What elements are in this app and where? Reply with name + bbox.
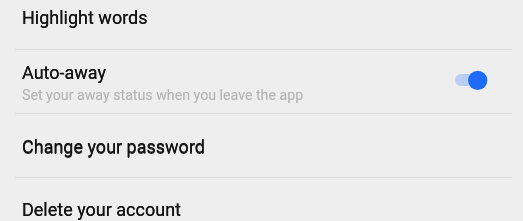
staticText: Delete your account bbox=[22, 199, 181, 220]
button[interactable]: Delete your account bbox=[0, 178, 523, 221]
staticText: Auto-away bbox=[22, 62, 107, 83]
staticText: Change your password bbox=[22, 136, 205, 157]
staticText: Highlight words bbox=[22, 7, 148, 28]
staticText: Change your password bbox=[22, 136, 205, 157]
staticText: Auto-away bbox=[22, 62, 107, 83]
staticText: Highlight words bbox=[22, 7, 148, 28]
staticText: Auto-away bbox=[22, 62, 107, 83]
button[interactable]: Highlight words bbox=[0, 0, 523, 50]
button[interactable]: Auto-away bbox=[0, 50, 523, 114]
staticText: Highlight words bbox=[22, 7, 148, 28]
staticText: Change your password bbox=[22, 137, 205, 158]
button[interactable]: Change your password bbox=[0, 114, 523, 178]
staticText: Delete your account bbox=[22, 199, 181, 220]
staticText: Set your away status when you leave the … bbox=[22, 87, 304, 104]
staticText: Delete your account bbox=[22, 199, 181, 220]
button[interactable]: Auto-away, on bbox=[455, 69, 487, 91]
